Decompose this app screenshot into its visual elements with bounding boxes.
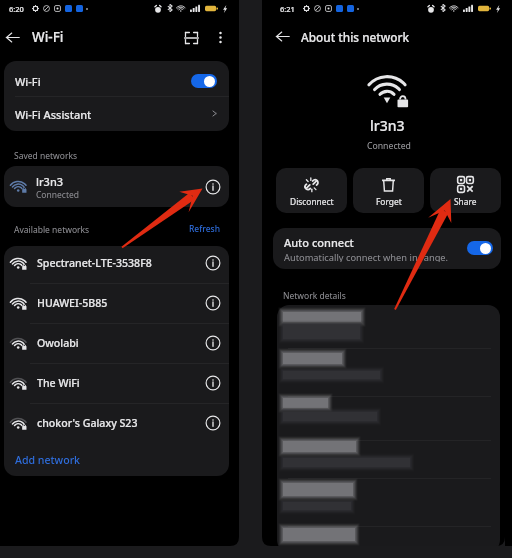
staticText: Spectranet-LTE-3538F8: [37, 256, 152, 270]
staticText: Add network: [15, 453, 81, 467]
staticText: Available networks: [14, 224, 90, 235]
staticText: Wi-Fi Assistant: [15, 107, 92, 121]
staticText: Auto connect: [284, 235, 354, 249]
button[interactable]: Back: [271, 25, 293, 47]
button[interactable]: [4, 323, 229, 363]
staticText: 6:20: [9, 4, 24, 14]
staticText: lr3n3: [36, 174, 64, 188]
staticText: HUAWEI-5B85: [37, 296, 108, 310]
button[interactable]: [4, 166, 229, 207]
button[interactable]: [4, 363, 229, 403]
staticText: lr3n3: [370, 116, 405, 135]
button[interactable]: Add network: [4, 443, 229, 476]
staticText: The WiFi: [37, 376, 80, 390]
button[interactable]: [4, 61, 229, 97]
button[interactable]: [277, 305, 500, 345]
button[interactable]: Network details: [204, 414, 222, 432]
button[interactable]: [4, 243, 229, 283]
staticText: chokor's Galaxy S23: [37, 416, 138, 430]
staticText: Wi-Fi: [32, 28, 64, 46]
button[interactable]: [277, 521, 500, 558]
staticText: Saved networks: [14, 150, 78, 161]
button[interactable]: Network details: [204, 178, 222, 196]
staticText: Wi-Fi: [15, 74, 41, 88]
button[interactable]: Network details: [204, 294, 222, 312]
staticText: About this network: [301, 29, 410, 45]
staticText: Owolabi: [37, 336, 79, 350]
button[interactable]: Refresh: [179, 222, 221, 236]
staticText: Connected: [367, 140, 411, 152]
button[interactable]: More options: [209, 26, 231, 48]
button[interactable]: Toggle: [191, 74, 217, 88]
button[interactable]: Back: [1, 26, 23, 48]
button[interactable]: Network details: [204, 254, 222, 272]
button[interactable]: Scan QR code: [180, 26, 203, 49]
staticText: Disconnect: [290, 196, 334, 207]
button[interactable]: Toggle: [467, 241, 493, 255]
staticText: Network details: [283, 290, 346, 301]
button[interactable]: [277, 476, 500, 516]
button[interactable]: Forget: [353, 168, 424, 213]
button[interactable]: Network details: [204, 334, 222, 352]
staticText: Automatically connect when in range.: [284, 251, 449, 262]
staticText: 6:21: [280, 4, 295, 14]
button[interactable]: [4, 97, 229, 131]
button[interactable]: [277, 434, 500, 474]
button[interactable]: [273, 228, 501, 269]
button[interactable]: [4, 403, 229, 443]
staticText: Refresh: [189, 223, 221, 235]
button[interactable]: [277, 346, 500, 386]
button[interactable]: Disconnect: [276, 168, 347, 213]
button[interactable]: [277, 391, 500, 431]
staticText: Connected: [36, 189, 79, 200]
button[interactable]: Network details: [204, 374, 222, 392]
staticText: Forget: [376, 196, 402, 207]
staticText: Share: [454, 196, 477, 207]
button[interactable]: [4, 283, 229, 323]
button[interactable]: Share: [430, 168, 501, 213]
